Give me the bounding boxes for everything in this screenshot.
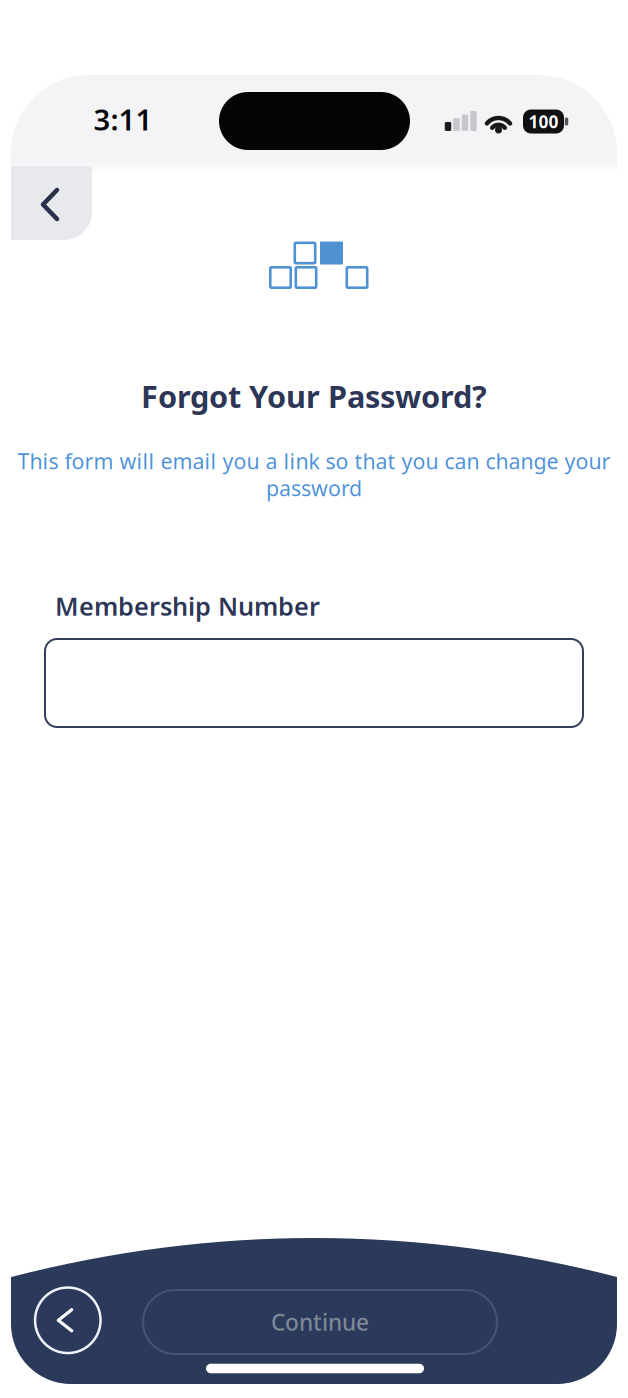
staticText: 3:11: [93, 99, 152, 138]
staticText: 100: [528, 110, 558, 133]
staticText: This form will email you a link so that …: [17, 447, 610, 475]
staticText: Continue: [271, 1307, 369, 1337]
staticText: password: [266, 474, 362, 502]
button[interactable]: Back: [11, 166, 92, 240]
staticText: Membership Number: [55, 589, 320, 623]
staticText: Forgot Your Password?: [141, 376, 487, 416]
button[interactable]: Back: [34, 1286, 102, 1354]
button[interactable]: Continue: [142, 1289, 498, 1355]
